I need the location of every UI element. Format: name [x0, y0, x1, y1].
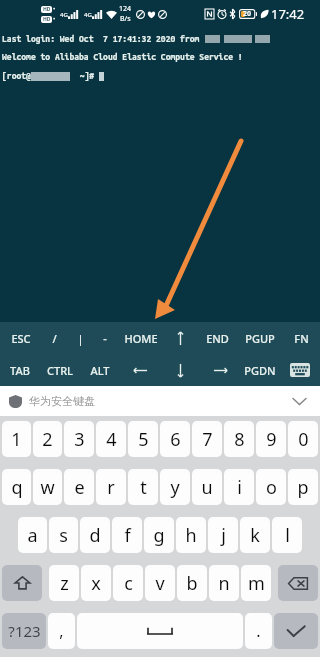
button[interactable]: CTRL: [40, 354, 80, 386]
staticText: b: [186, 571, 198, 596]
button[interactable]: b: [177, 565, 207, 601]
staticText: 4G: [60, 11, 68, 19]
button[interactable]: 2: [33, 421, 62, 457]
staticText: m: [248, 571, 265, 596]
staticText: q: [11, 475, 23, 500]
button[interactable]: END: [196, 322, 238, 354]
staticText: i: [237, 475, 242, 500]
button[interactable]: TAB: [0, 354, 40, 386]
button[interactable]: y: [160, 469, 190, 505]
staticText: k: [250, 523, 260, 548]
button[interactable]: 6: [160, 421, 190, 457]
button[interactable]: l: [272, 517, 302, 553]
button[interactable]: 4: [96, 421, 126, 457]
button[interactable]: n: [209, 565, 239, 601]
button[interactable]: Left: [120, 354, 160, 386]
staticText: FN: [294, 331, 309, 346]
button[interactable]: Enter: [274, 613, 318, 649]
button[interactable]: c: [113, 565, 143, 601]
button[interactable]: a: [18, 517, 47, 553]
staticText: TAB: [10, 363, 30, 378]
button[interactable]: o: [256, 469, 286, 505]
staticText: END: [206, 331, 229, 346]
button[interactable]: PGUP: [238, 322, 282, 354]
button[interactable]: v: [145, 565, 175, 601]
staticText: 8: [234, 427, 245, 452]
button[interactable]: p: [288, 469, 318, 505]
button[interactable]: |: [67, 322, 93, 354]
button[interactable]: ?123: [2, 613, 46, 649]
staticText: v: [155, 571, 165, 596]
button[interactable]: -: [93, 322, 116, 354]
button[interactable]: FN: [282, 322, 320, 354]
button[interactable]: t: [128, 469, 158, 505]
staticText: 4: [106, 427, 117, 452]
button[interactable]: f: [112, 517, 142, 553]
staticText: 6: [170, 427, 181, 452]
staticText: CTRL: [47, 363, 73, 378]
staticText: 3: [74, 427, 85, 452]
button[interactable]: 9: [256, 421, 286, 457]
button[interactable]: ALT: [80, 354, 120, 386]
staticText: 7: [202, 427, 213, 452]
staticText: PGDN: [244, 363, 276, 378]
button[interactable]: 0: [288, 421, 318, 457]
staticText: Welcome to Alibaba Cloud Elastic Compute…: [2, 52, 243, 62]
staticText: r: [107, 475, 115, 500]
staticText: 124: [119, 4, 132, 14]
staticText: h: [185, 523, 197, 548]
button[interactable]: 7: [192, 421, 222, 457]
staticText: B/s: [120, 14, 131, 24]
staticText: HD: [43, 6, 51, 13]
staticText: 5: [138, 427, 149, 452]
staticText: c: [124, 571, 133, 596]
button[interactable]: Down: [160, 354, 200, 386]
button[interactable]: d: [80, 517, 110, 553]
button[interactable]: w: [33, 469, 62, 505]
button[interactable]: 5: [128, 421, 158, 457]
button[interactable]: .: [245, 613, 272, 649]
staticText: ~]#: [70, 71, 99, 81]
button[interactable]: g: [144, 517, 174, 553]
button[interactable]: Collapse keyboard: [289, 391, 309, 411]
button[interactable]: ESC: [0, 322, 41, 354]
button[interactable]: i: [224, 469, 254, 505]
button[interactable]: /: [41, 322, 67, 354]
button[interactable]: z: [49, 565, 79, 601]
button[interactable]: 1: [2, 421, 31, 457]
staticText: 2: [42, 427, 53, 452]
button[interactable]: e: [64, 469, 94, 505]
staticText: p: [297, 475, 309, 500]
button[interactable]: PGDN: [240, 354, 280, 386]
button[interactable]: x: [81, 565, 111, 601]
button[interactable]: j: [208, 517, 238, 553]
staticText: a: [27, 523, 38, 548]
staticText: 1: [11, 427, 22, 452]
staticText: u: [201, 475, 213, 500]
button[interactable]: ,: [48, 613, 75, 649]
button[interactable]: s: [49, 517, 78, 553]
button[interactable]: Hide keyboard: [280, 354, 320, 386]
button[interactable]: k: [240, 517, 270, 553]
button[interactable]: r: [96, 469, 126, 505]
button[interactable]: HOME: [116, 322, 165, 354]
button[interactable]: Shift: [2, 565, 42, 601]
button[interactable]: Space: [77, 613, 243, 649]
staticText: e: [74, 475, 85, 500]
button[interactable]: u: [192, 469, 222, 505]
button[interactable]: q: [2, 469, 31, 505]
staticText: o: [266, 475, 277, 500]
button[interactable]: m: [241, 565, 271, 601]
staticText: l: [285, 523, 290, 548]
button[interactable]: h: [176, 517, 206, 553]
button[interactable]: Backspace: [278, 565, 318, 601]
staticText: ?123: [8, 621, 41, 641]
staticText: ,: [59, 620, 64, 642]
button[interactable]: Up: [165, 322, 196, 354]
button[interactable]: Right: [200, 354, 240, 386]
staticText: w: [40, 475, 55, 500]
button[interactable]: 3: [64, 421, 94, 457]
staticText: 17:42: [271, 5, 305, 23]
button[interactable]: 8: [224, 421, 254, 457]
staticText: ALT: [90, 363, 110, 378]
